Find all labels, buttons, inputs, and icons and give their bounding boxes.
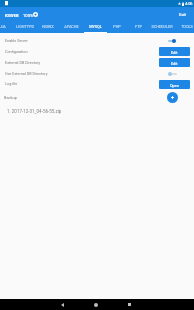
button[interactable]: PHP — [106, 21, 127, 33]
button[interactable]: LIGHTTPD — [13, 21, 36, 33]
staticText: Configuration — [5, 50, 28, 54]
staticText: KSWEB — [5, 13, 19, 18]
button[interactable]: APACHE — [60, 21, 83, 33]
staticText: Edit — [171, 50, 178, 54]
button[interactable]: FTP — [127, 21, 149, 33]
staticText: Exit — [179, 12, 186, 17]
staticText: Open — [170, 83, 179, 87]
button[interactable]: SCHEDULER — [149, 21, 174, 33]
button[interactable]: Enable Server — [0, 36, 194, 46]
button[interactable]: 1. 2017-12-31_04-56-55.zip — [0, 106, 194, 116]
button[interactable]: Open — [159, 80, 190, 89]
button[interactable]: MYSQL — [84, 21, 107, 33]
button[interactable]: Use External DB Directory — [0, 69, 194, 79]
button[interactable]: Home — [80, 299, 112, 310]
staticText: 1. 2017-12-31_04-56-55.zip — [7, 109, 62, 114]
button[interactable]: External DB Directory — [0, 58, 194, 68]
button[interactable]: Log file — [0, 79, 194, 89]
staticText: APACHE — [64, 24, 79, 28]
staticText: Edit — [171, 61, 178, 65]
button[interactable]: Exit — [175, 10, 190, 19]
button[interactable]: Edit — [159, 47, 190, 56]
staticText: Backup — [4, 95, 17, 100]
staticText: SCHEDULER — [151, 24, 173, 28]
staticText: Use External DB Directory — [5, 72, 48, 76]
button[interactable]: Switch off — [165, 69, 179, 79]
button[interactable]: Back — [46, 299, 78, 310]
staticText: 100% — [23, 13, 34, 18]
staticText: PHP — [113, 24, 121, 28]
button[interactable]: Edit — [159, 58, 190, 67]
staticText: 4:06 — [185, 1, 193, 6]
button[interactable]: Add backup — [167, 92, 178, 103]
button[interactable]: Switch on — [165, 36, 179, 46]
staticText: External DB Directory — [5, 61, 41, 65]
staticText: FTP — [135, 24, 142, 28]
button[interactable]: Configuration — [0, 47, 194, 57]
staticText: Enable Server — [5, 39, 28, 43]
staticText: Log file — [5, 82, 18, 86]
button[interactable]: Server status — [32, 11, 38, 17]
staticText: MYSQL — [89, 24, 102, 28]
staticText: NGINX — [42, 24, 54, 28]
button[interactable]: NGINX — [36, 21, 60, 33]
staticText: LUA — [0, 24, 6, 28]
staticText: TOOLS — [181, 24, 193, 28]
staticText: LIGHTTPD — [16, 24, 34, 28]
button[interactable]: LUA — [0, 21, 6, 33]
button[interactable]: Recents — [113, 299, 145, 310]
button[interactable]: TOOLS — [174, 21, 194, 33]
